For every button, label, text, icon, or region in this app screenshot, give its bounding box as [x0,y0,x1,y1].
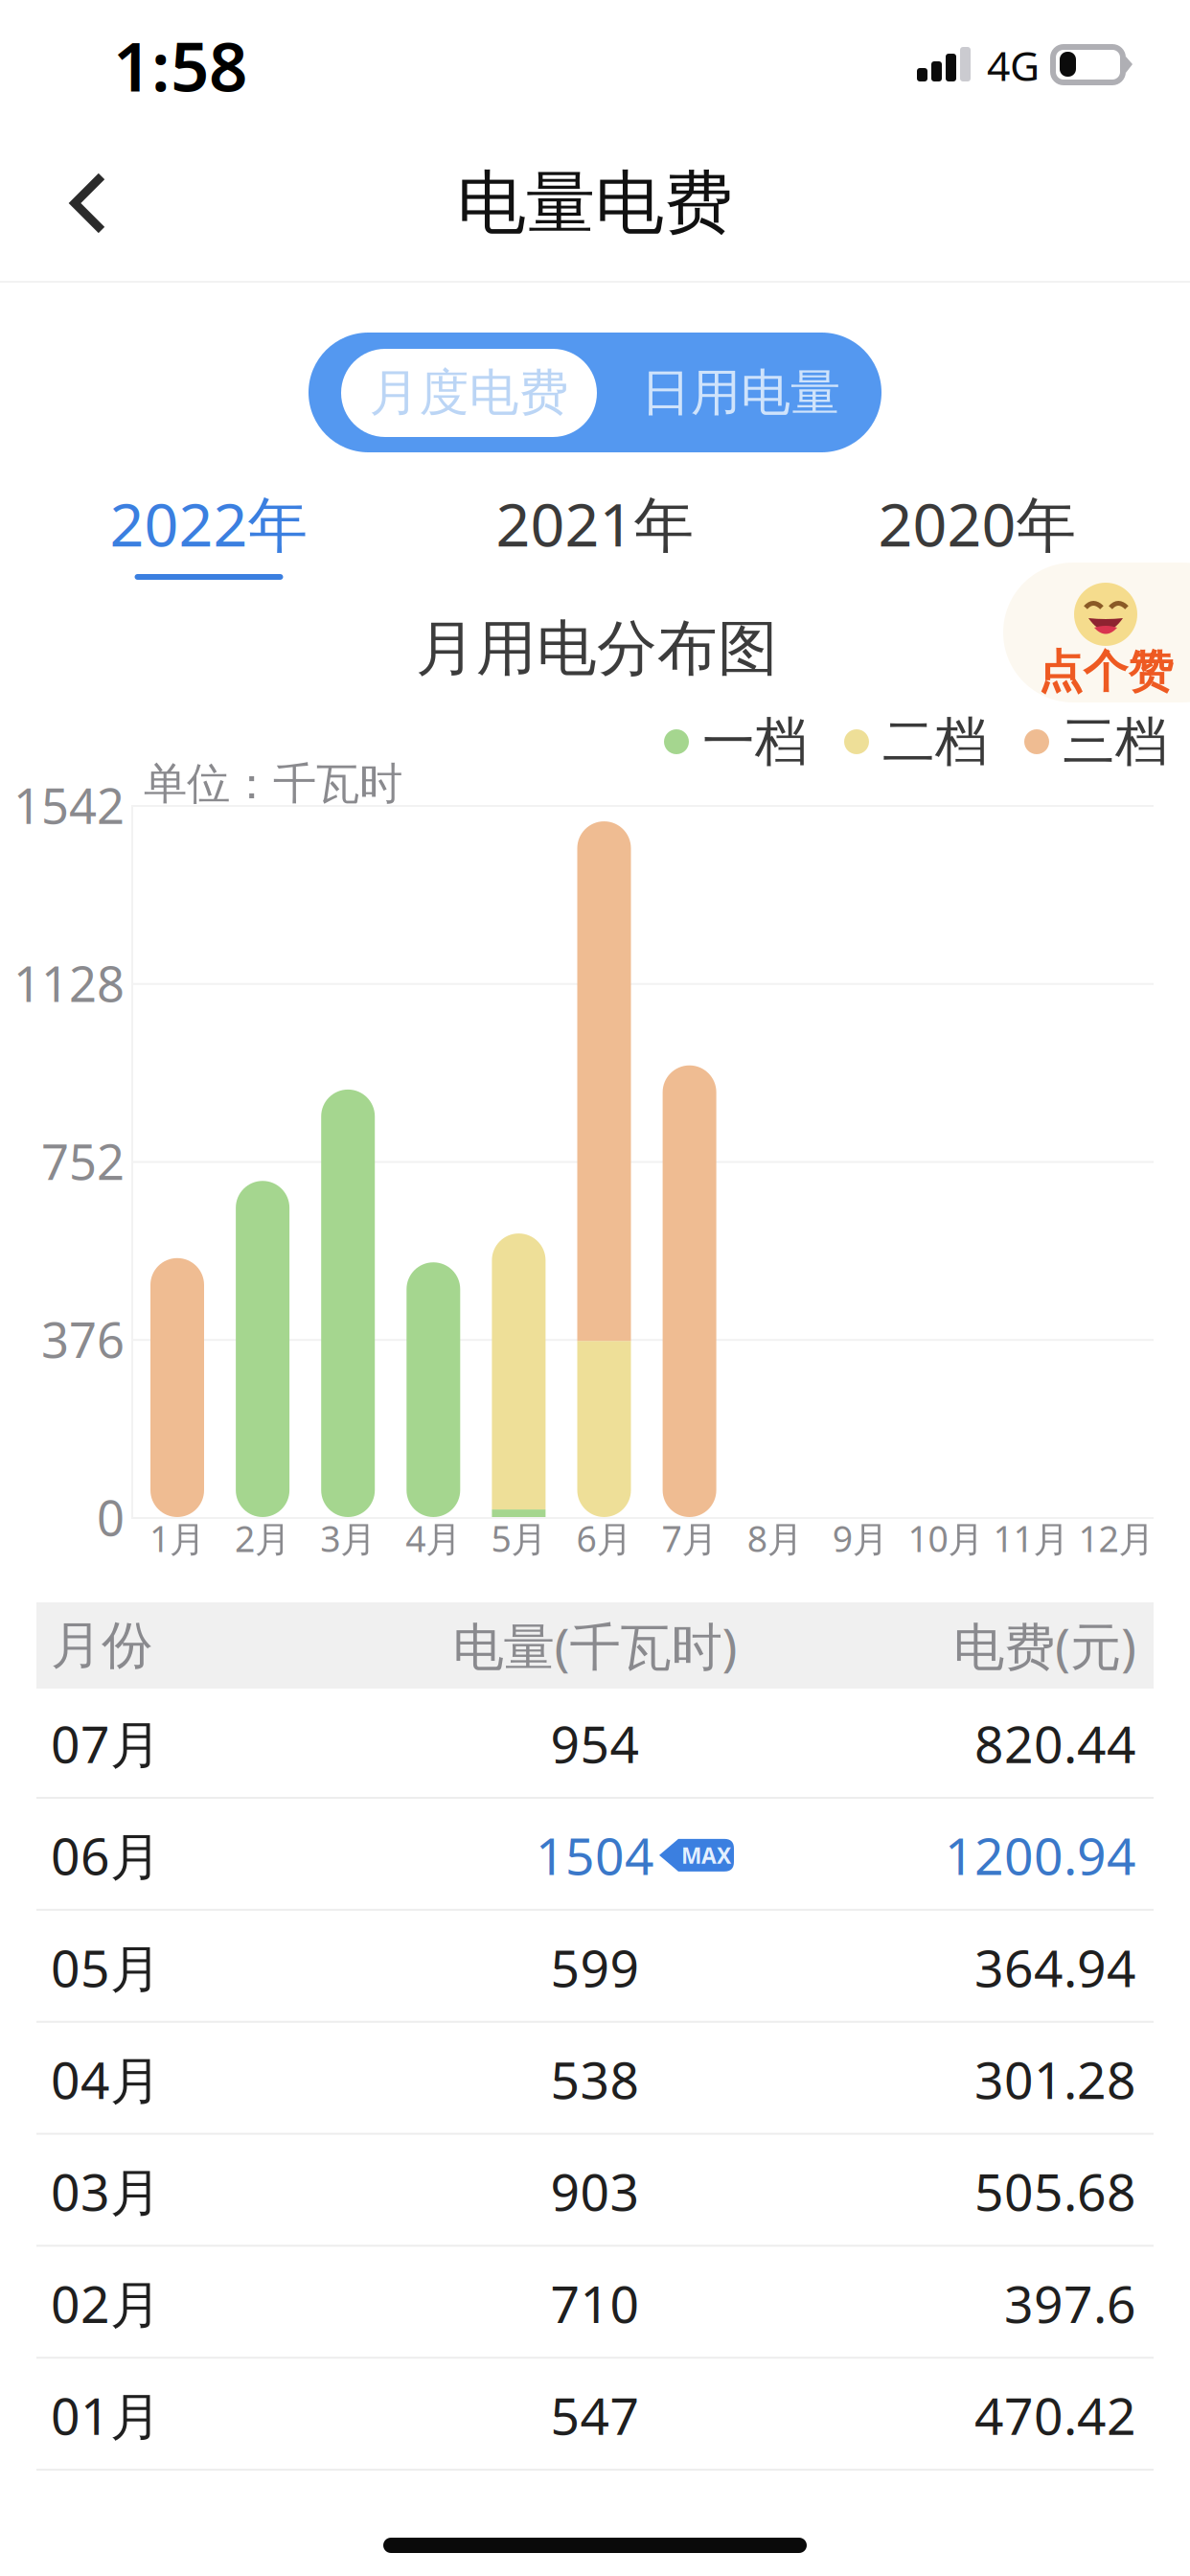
staticText: 5月 [491,1514,547,1562]
staticText: 2020年 [878,483,1076,563]
staticText: 752 [41,1129,125,1193]
staticText: 月用电分布图 [416,612,778,686]
staticText: 3月 [320,1514,376,1562]
button[interactable]: 点个赞 [1003,563,1190,702]
staticText: 954 [550,1709,640,1777]
staticText: 1月 [149,1514,205,1562]
staticText: 10月 [908,1514,983,1562]
staticText: 2022年 [110,483,308,563]
staticText: 05月 [51,1933,161,2001]
staticText: 月度电费 [369,362,569,424]
button[interactable]: 2022年 [75,489,343,604]
staticText: 1504 [536,1821,654,1889]
staticText: 点个赞 [1038,644,1173,699]
staticText: 03月 [51,2157,161,2225]
staticText: 710 [550,2269,640,2337]
staticText: MAX [681,1841,731,1870]
staticText: 月份 [51,1614,152,1677]
staticText: 02月 [51,2269,161,2337]
staticText: 364.94 [974,1933,1136,2001]
staticText: 0 [97,1485,125,1549]
staticText: 07月 [51,1709,161,1777]
staticText: 301.28 [974,2045,1136,2113]
staticText: 9月 [832,1514,888,1562]
button[interactable]: 2020年 [843,489,1111,604]
staticText: 一档 [702,710,808,774]
staticText: 二档 [882,710,988,774]
staticText: 1128 [13,951,125,1015]
staticText: 7月 [662,1514,717,1562]
staticText: 4G [987,38,1040,92]
staticText: 1200.94 [945,1821,1136,1889]
button[interactable]: 月度电费 [341,349,597,437]
staticText: 电费(元) [953,1612,1136,1679]
staticText: 电量电费 [457,161,733,246]
staticText: 599 [550,1933,640,2001]
staticText: 电量(千瓦时) [453,1612,737,1679]
staticText: 06月 [51,1821,161,1889]
staticText: 4月 [406,1514,461,1562]
staticText: 820.44 [974,1709,1136,1777]
staticText: 538 [550,2045,640,2113]
staticText: 04月 [51,2045,161,2113]
staticText: 397.6 [1004,2269,1136,2337]
staticText: 11月 [993,1514,1069,1562]
staticText: 2月 [235,1514,290,1562]
staticText: 12月 [1078,1514,1154,1562]
staticText: 6月 [576,1514,632,1562]
staticText: 1:58 [113,20,247,110]
staticText: 505.68 [974,2157,1136,2225]
button[interactable]: 2021年 [461,489,729,604]
staticText: 1542 [13,773,125,837]
staticText: 2021年 [496,483,694,563]
button[interactable]: Back [0,0,1190,287]
staticText: 470.42 [974,2381,1136,2449]
staticText: 三档 [1063,710,1168,774]
staticText: 547 [550,2381,640,2449]
staticText: 376 [41,1307,125,1371]
staticText: 单位：千瓦时 [144,757,402,810]
staticText: 日用电量 [641,362,840,424]
button[interactable]: 日用电量 [606,349,875,437]
staticText: 903 [550,2157,640,2225]
staticText: 8月 [747,1514,803,1562]
staticText: 01月 [51,2381,161,2449]
